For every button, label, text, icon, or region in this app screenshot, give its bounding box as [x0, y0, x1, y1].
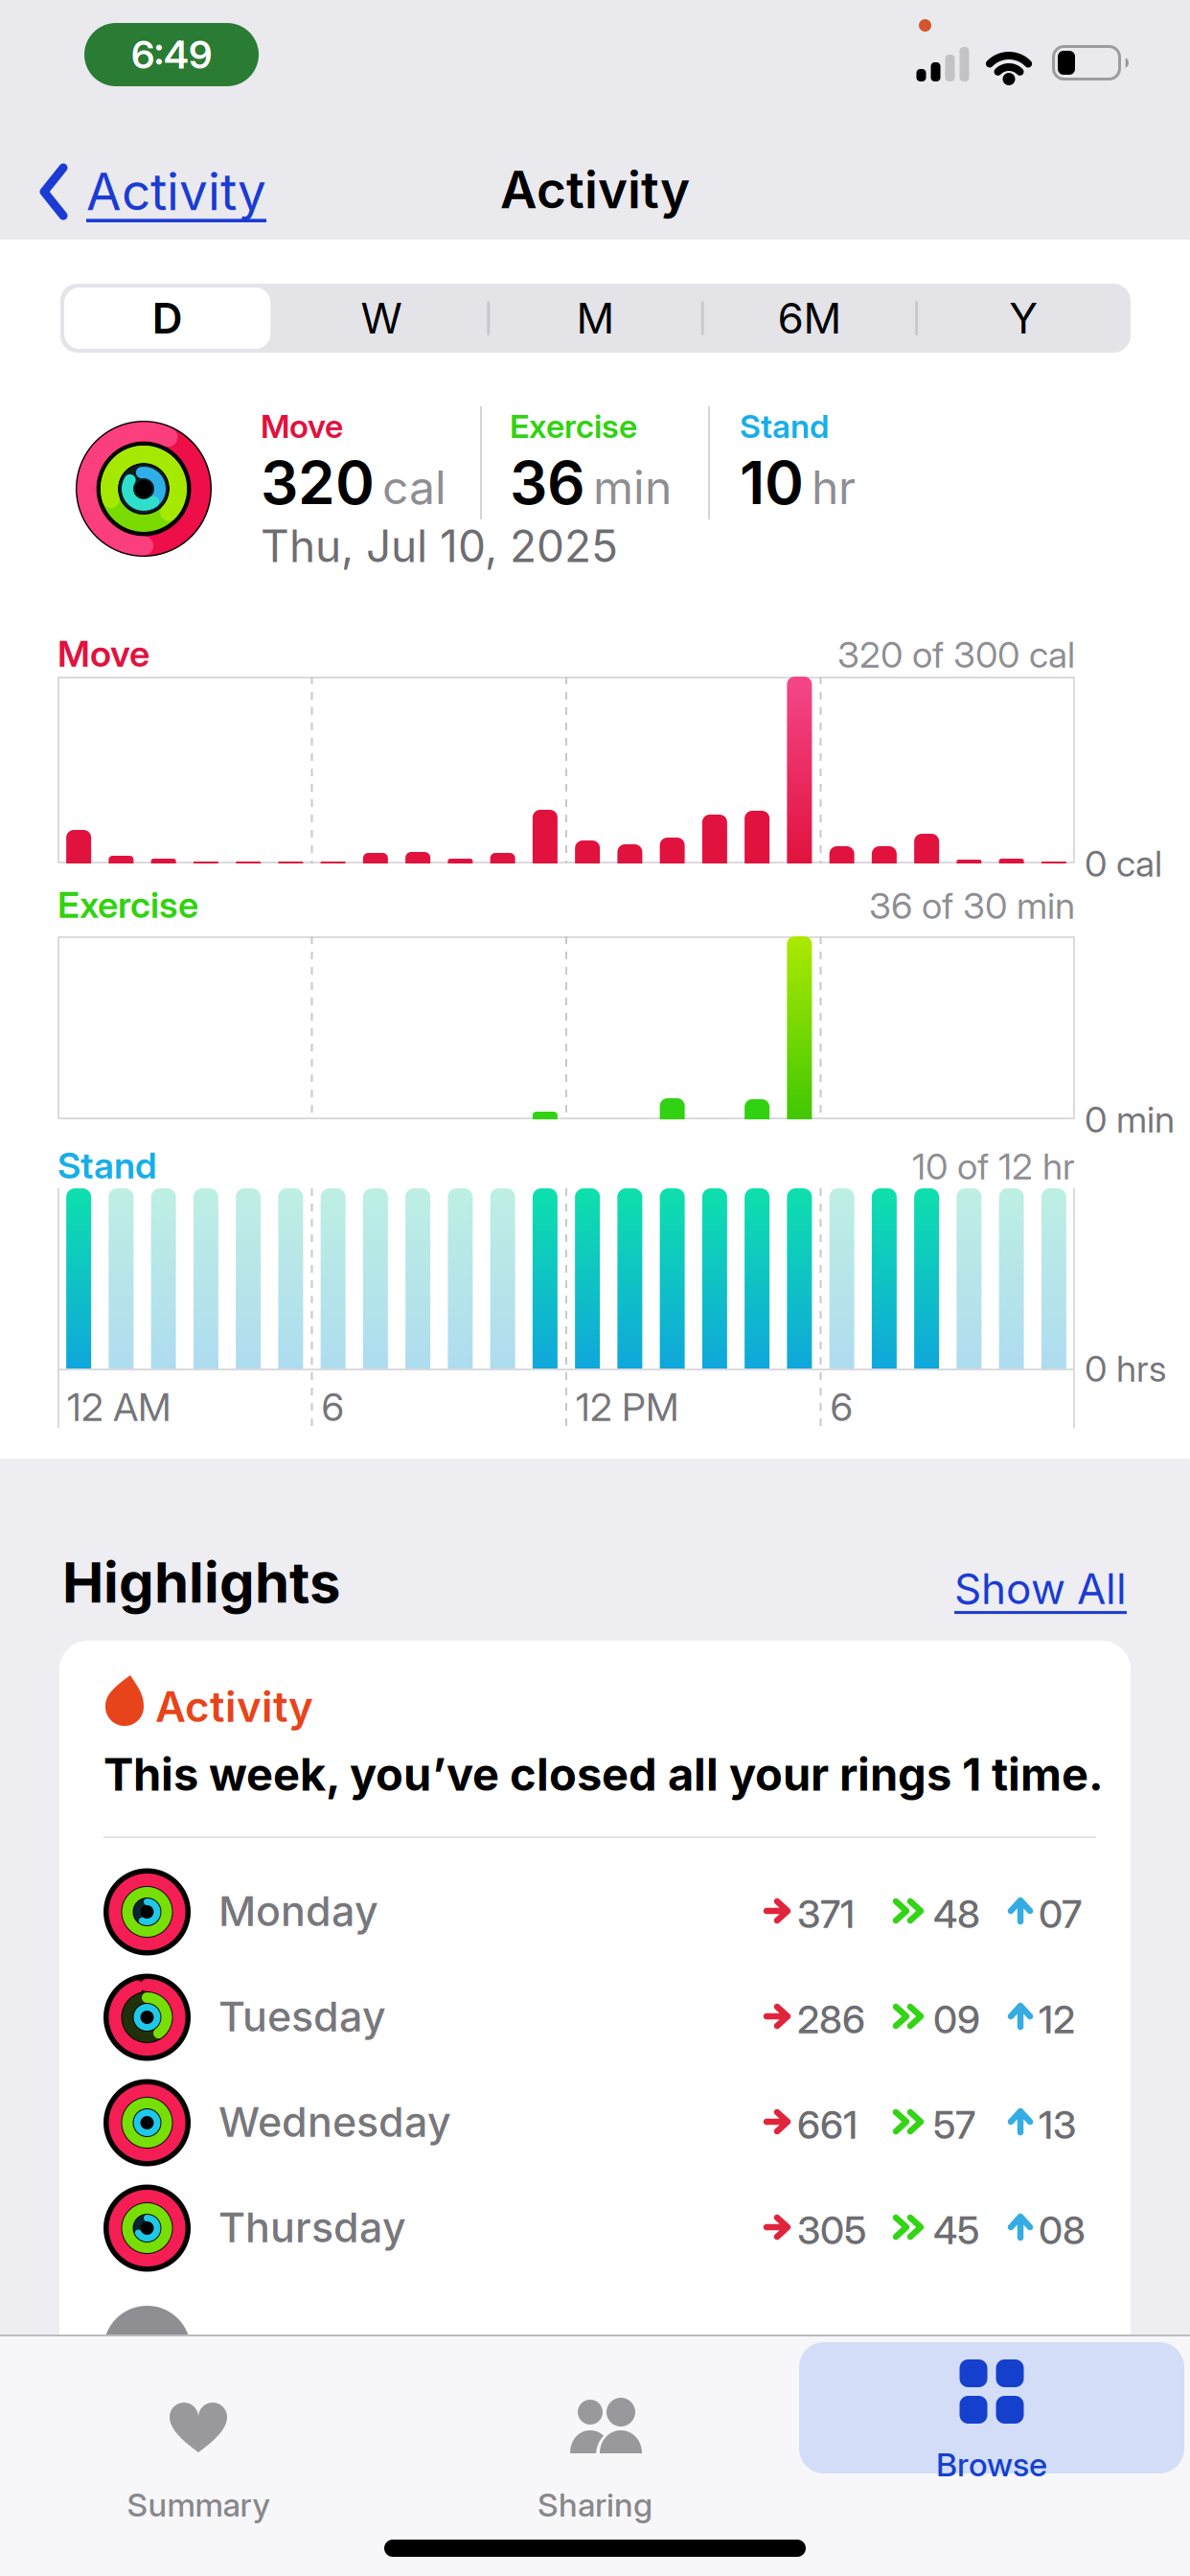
staticText: 6 — [830, 1384, 853, 1430]
staticText: Thursday — [218, 2202, 406, 2252]
staticText: hr — [812, 460, 856, 515]
staticText: Highlights — [62, 1549, 340, 1616]
staticText: 07 — [1039, 1891, 1082, 1937]
staticText: Tuesday — [218, 1991, 386, 2041]
button[interactable]: Browse — [799, 2342, 1184, 2473]
staticText: Move — [261, 406, 343, 446]
staticText: Summary — [127, 2485, 270, 2524]
staticText: 12 — [1039, 1996, 1075, 2043]
staticText: Monday — [218, 1886, 378, 1936]
staticText: Activity — [86, 161, 266, 222]
button[interactable]: M — [488, 284, 703, 353]
staticText: Show All — [954, 1563, 1127, 1614]
button[interactable]: Back — [40, 161, 266, 222]
staticText: 6 — [321, 1384, 344, 1430]
button[interactable]: W — [274, 284, 488, 353]
button[interactable]: Summary — [6, 2338, 391, 2472]
staticText: 45 — [933, 2207, 979, 2253]
staticText: 305 — [797, 2207, 866, 2253]
staticText: 36 — [510, 447, 585, 518]
staticText: 10 of 12 hr — [912, 1144, 1075, 1188]
staticText: Activity — [500, 159, 690, 221]
staticText: Exercise — [57, 883, 198, 927]
button[interactable]: Sharing — [402, 2338, 788, 2472]
staticText: Activity — [155, 1681, 313, 1732]
staticText: 6M — [777, 293, 842, 344]
staticText: 6:49 — [131, 31, 212, 78]
staticText: 661 — [797, 2102, 858, 2148]
button[interactable]: D — [64, 287, 271, 349]
staticText: This week, you’ve closed all your rings … — [103, 1747, 1104, 1802]
staticText: W — [361, 293, 402, 344]
button[interactable]: 6M — [703, 284, 917, 353]
staticText: 12 AM — [67, 1384, 171, 1430]
button[interactable]: Show All — [954, 1563, 1127, 1614]
staticText: cal — [382, 460, 446, 515]
staticText: Exercise — [510, 406, 637, 446]
button[interactable]: Activity — [59, 1641, 1131, 2455]
staticText: 286 — [797, 1996, 865, 2043]
button[interactable]: Y — [917, 284, 1131, 353]
staticText: 0 cal — [1085, 841, 1162, 885]
staticText: min — [593, 460, 672, 515]
button[interactable]: Return to call — [84, 23, 259, 86]
staticText: 57 — [933, 2102, 975, 2148]
staticText: 0 min — [1085, 1097, 1175, 1141]
staticText: 08 — [1039, 2207, 1086, 2253]
staticText: 320 — [261, 447, 375, 518]
staticText: Move — [57, 632, 149, 676]
staticText: 0 hrs — [1085, 1346, 1166, 1391]
staticText: Sharing — [538, 2485, 652, 2524]
staticText: 13 — [1039, 2102, 1076, 2148]
staticText: D — [152, 293, 183, 344]
staticText: 371 — [797, 1891, 855, 1937]
staticText: Stand — [57, 1143, 157, 1187]
staticText: Y — [1009, 293, 1038, 344]
staticText: Thu, Jul 10, 2025 — [261, 519, 618, 573]
staticText: 12 PM — [576, 1384, 678, 1430]
staticText: 36 of 30 min — [869, 884, 1075, 928]
staticText: 48 — [933, 1891, 980, 1937]
staticText: M — [576, 293, 615, 344]
staticText: Wednesday — [218, 2097, 451, 2147]
staticText: Browse — [936, 2445, 1047, 2484]
staticText: 09 — [933, 1996, 980, 2043]
staticText: 10 — [740, 447, 804, 518]
staticText: 320 of 300 cal — [837, 632, 1075, 677]
staticText: Stand — [740, 406, 829, 446]
